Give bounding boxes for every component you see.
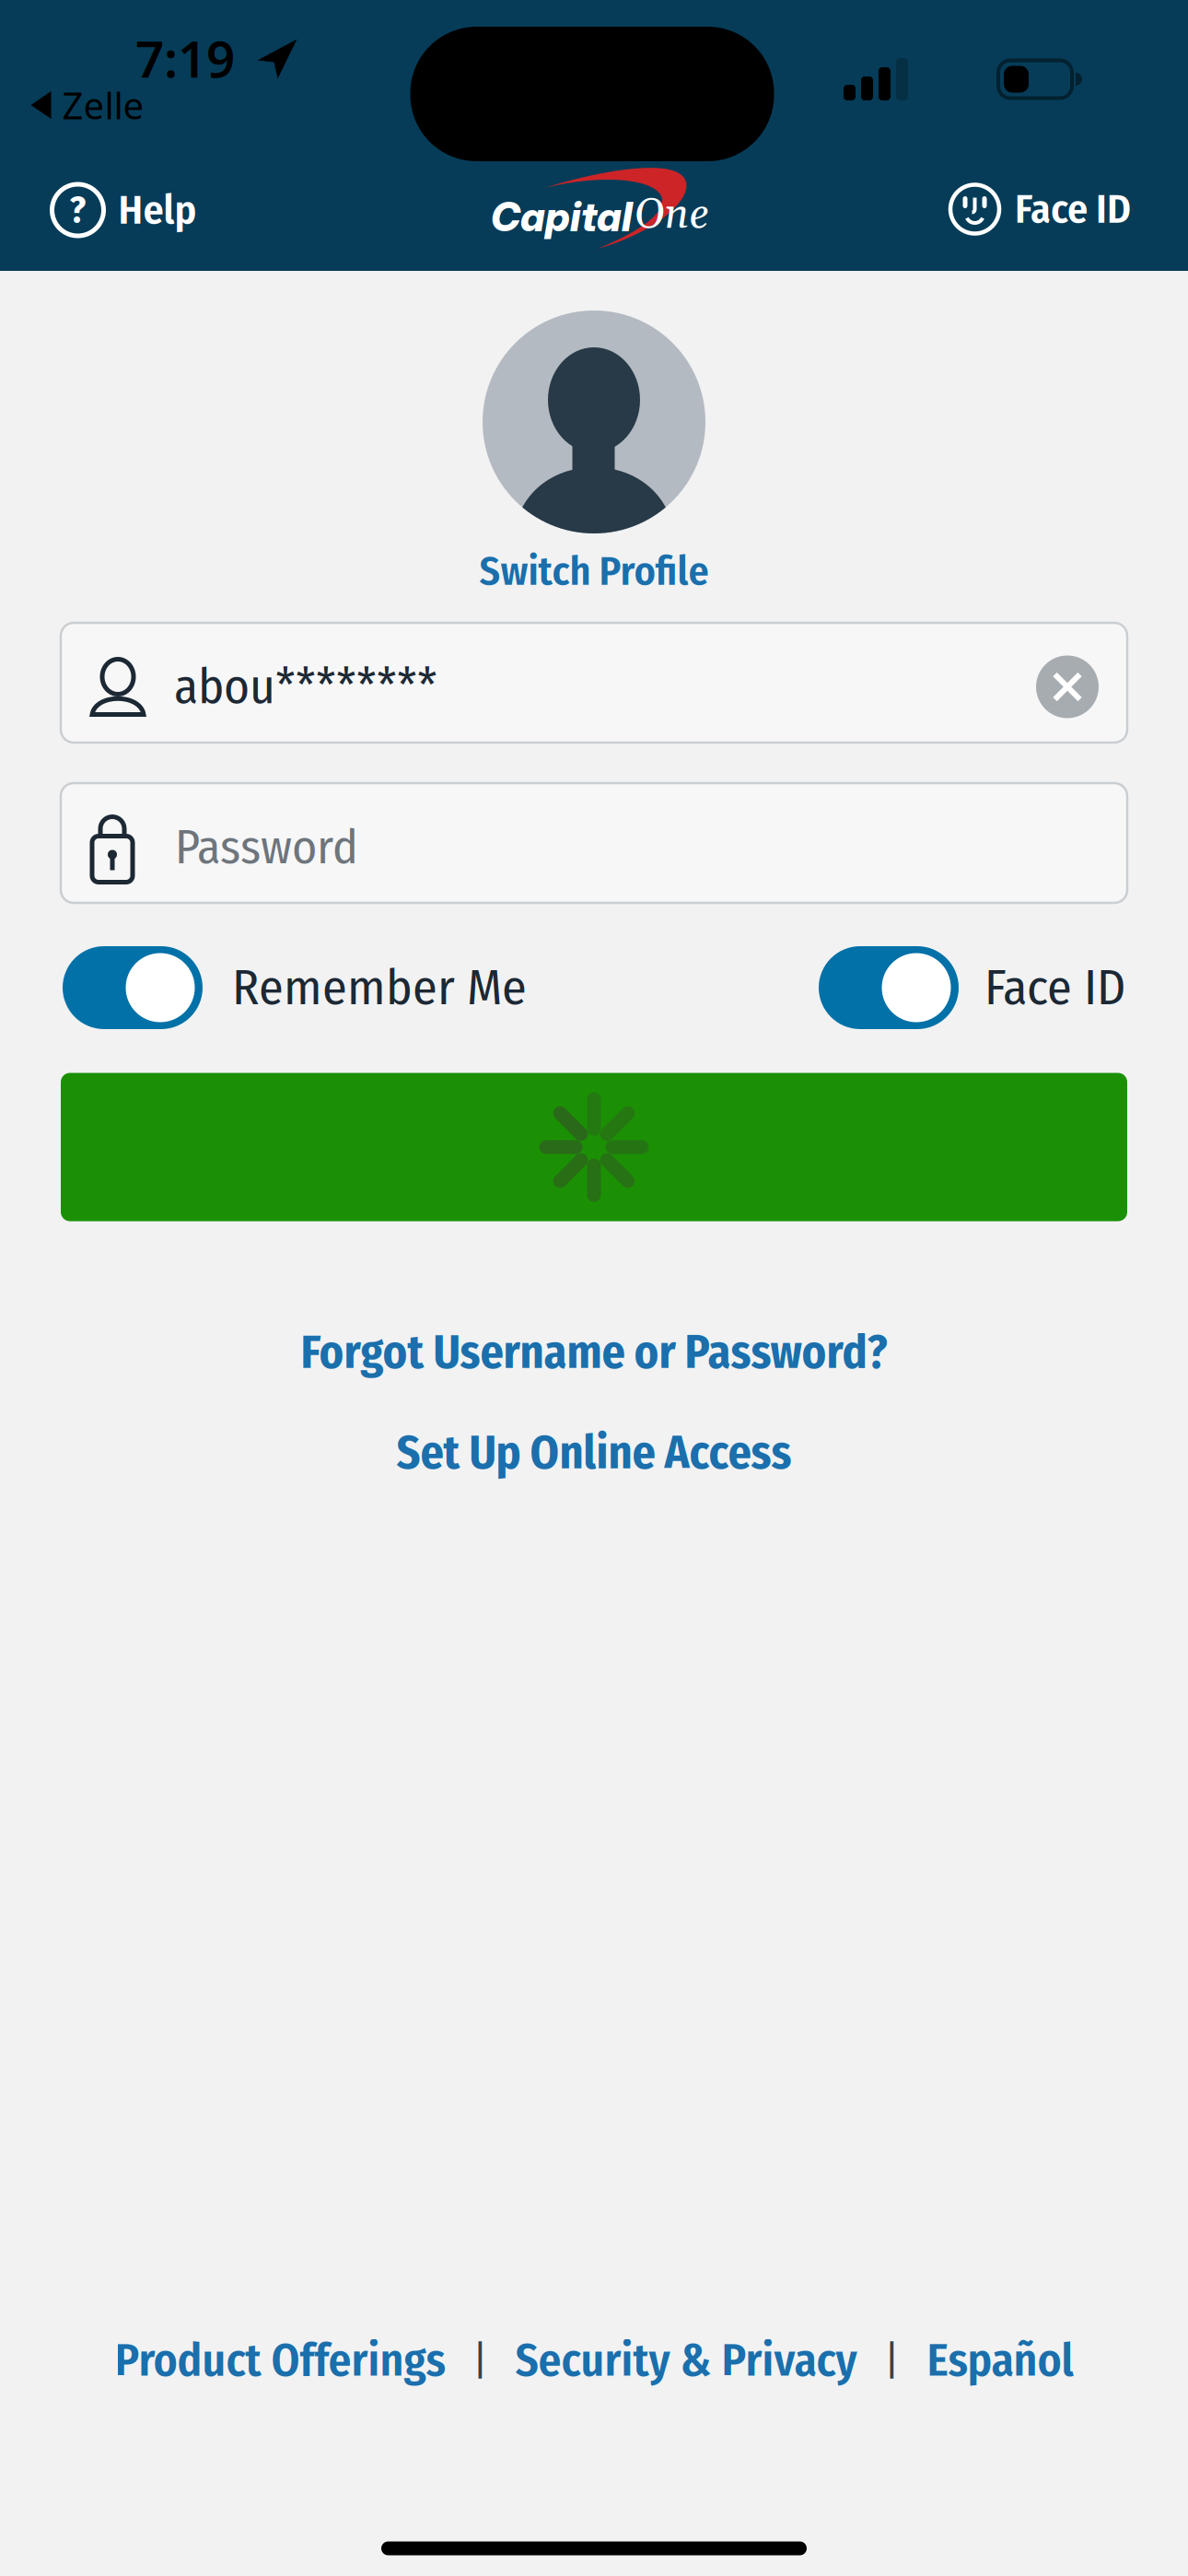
staticText: One bbox=[634, 189, 709, 242]
staticText: Capital bbox=[491, 192, 633, 241]
staticText: ? bbox=[70, 188, 86, 232]
button[interactable]: Clear username bbox=[1036, 656, 1099, 718]
button[interactable]: Forgot Username or Password? bbox=[301, 1325, 887, 1380]
staticText: Password bbox=[175, 818, 358, 876]
button[interactable]: ? bbox=[50, 182, 197, 238]
staticText: Set Up Online Access bbox=[396, 1425, 792, 1481]
staticText: Switch Profile bbox=[479, 547, 709, 596]
staticText: | bbox=[473, 2336, 488, 2385]
button[interactable]: Face ID bbox=[819, 946, 1125, 1029]
staticText: Zelle bbox=[62, 81, 144, 129]
staticText: Face ID bbox=[1015, 185, 1131, 233]
staticText: abou******** bbox=[174, 657, 437, 716]
button[interactable]: Switch Profile bbox=[479, 547, 709, 596]
staticText: Face ID bbox=[984, 958, 1125, 1018]
staticText: Help bbox=[118, 186, 197, 234]
button[interactable]: Product Offerings bbox=[115, 2333, 445, 2388]
staticText: Remember Me bbox=[232, 958, 527, 1018]
button[interactable]: Español bbox=[927, 2333, 1073, 2388]
staticText: 7:19 bbox=[135, 25, 235, 91]
button[interactable]: Security & Privacy bbox=[515, 2333, 857, 2388]
staticText: Forgot Username or Password? bbox=[301, 1325, 887, 1380]
staticText: | bbox=[885, 2336, 899, 2385]
button[interactable]: Set Up Online Access bbox=[396, 1425, 792, 1481]
staticText: Product Offerings bbox=[115, 2333, 445, 2388]
button[interactable]: Face ID bbox=[950, 185, 1131, 234]
staticText: Security & Privacy bbox=[515, 2333, 857, 2388]
button[interactable]: Remember Me bbox=[63, 946, 527, 1029]
staticText: Español bbox=[927, 2333, 1073, 2388]
button[interactable]: Sign In bbox=[61, 1073, 1127, 1221]
